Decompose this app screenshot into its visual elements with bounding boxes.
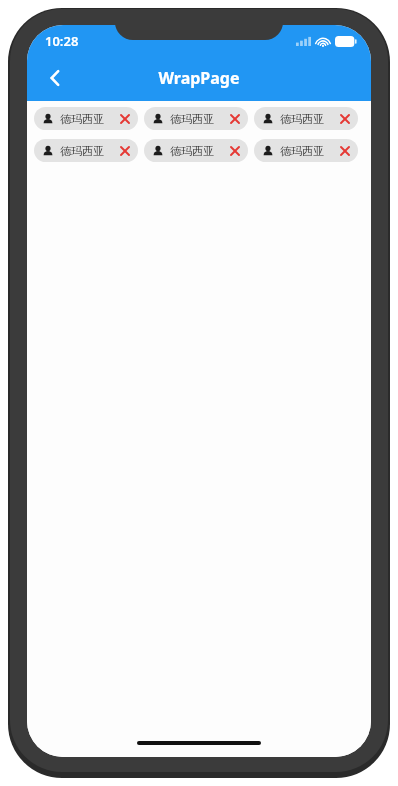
- staticText: 德玛西亚: [170, 144, 214, 158]
- staticText: 德玛西亚: [280, 144, 324, 158]
- button[interactable]: 德玛西亚: [254, 107, 358, 130]
- staticText: 10:28: [45, 32, 79, 50]
- button[interactable]: Back: [33, 56, 77, 100]
- button[interactable]: Delete: [228, 144, 241, 157]
- button[interactable]: Delete: [228, 112, 241, 125]
- button[interactable]: Delete: [338, 112, 351, 125]
- button[interactable]: Delete: [338, 144, 351, 157]
- staticText: 德玛西亚: [170, 112, 214, 126]
- button[interactable]: 德玛西亚: [34, 107, 138, 130]
- button[interactable]: 德玛西亚: [254, 139, 358, 162]
- button[interactable]: 德玛西亚: [144, 139, 248, 162]
- button[interactable]: Delete: [118, 112, 131, 125]
- staticText: 德玛西亚: [280, 112, 324, 126]
- staticText: WrapPage: [158, 67, 240, 89]
- staticText: 德玛西亚: [60, 112, 104, 126]
- button[interactable]: 德玛西亚: [144, 107, 248, 130]
- button[interactable]: 德玛西亚: [34, 139, 138, 162]
- button[interactable]: Delete: [118, 144, 131, 157]
- staticText: 德玛西亚: [60, 144, 104, 158]
